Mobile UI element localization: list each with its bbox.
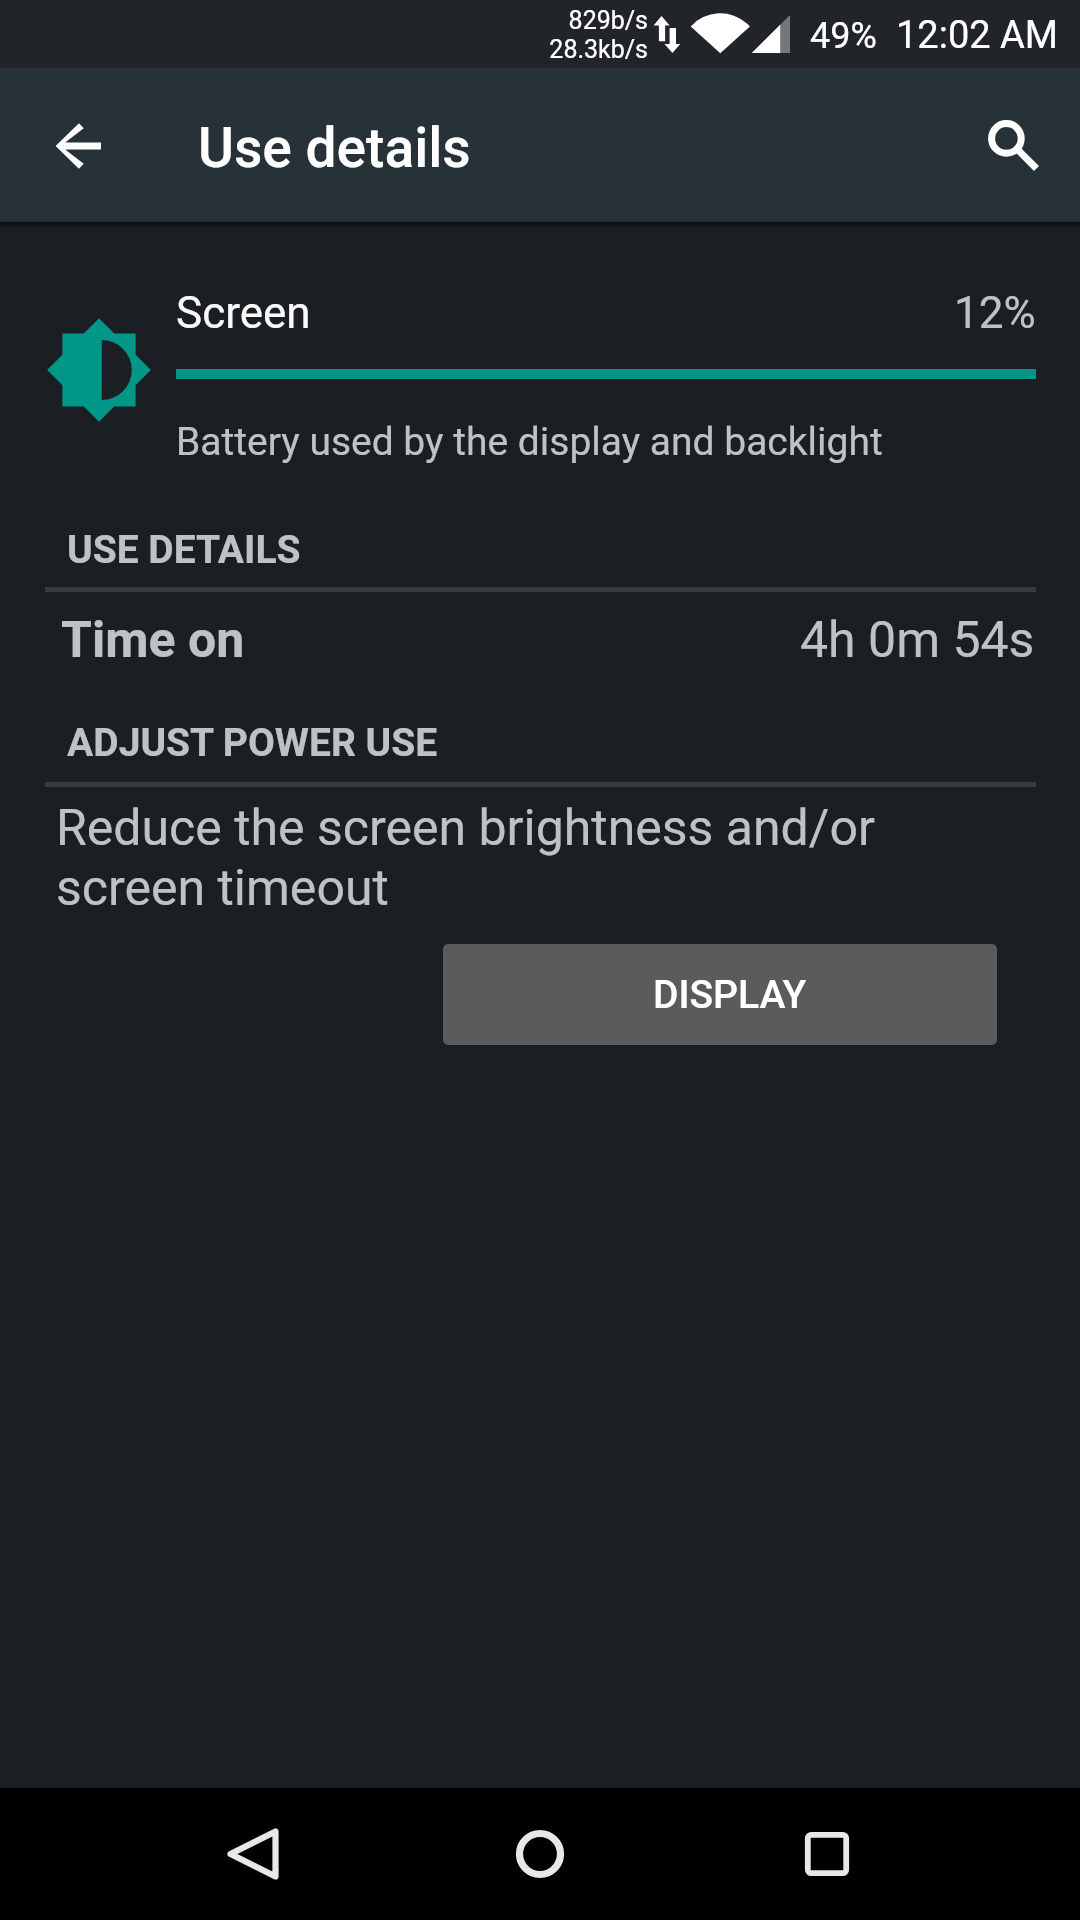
staticText: USE DETAILS (67, 527, 301, 573)
staticText: 12% (954, 287, 1036, 339)
staticText: 12:02 AM (896, 13, 1059, 58)
button[interactable]: Recent apps (737, 1788, 917, 1920)
staticText: 49% (810, 15, 877, 57)
staticText: Reduce the screen brightness and/or scre… (56, 799, 936, 917)
button[interactable]: Navigate up (28, 68, 127, 222)
button[interactable]: Home (450, 1788, 630, 1920)
staticText: 829b/s (568, 6, 648, 35)
staticText: Time on (61, 611, 245, 670)
button[interactable]: Back (163, 1788, 343, 1920)
staticText: ADJUST POWER USE (67, 720, 438, 766)
staticText: Battery used by the display and backligh… (176, 419, 883, 465)
button[interactable]: Search (955, 68, 1080, 222)
button[interactable]: Time on (0, 592, 1080, 685)
staticText: 4h 0m 54s (800, 611, 1035, 670)
staticText: 28.3kb/s (549, 35, 648, 64)
staticText: Use details (198, 116, 471, 180)
staticText: Screen (176, 287, 311, 339)
staticText: DISPLAY (653, 972, 807, 1018)
button[interactable]: DISPLAY (443, 944, 997, 1045)
